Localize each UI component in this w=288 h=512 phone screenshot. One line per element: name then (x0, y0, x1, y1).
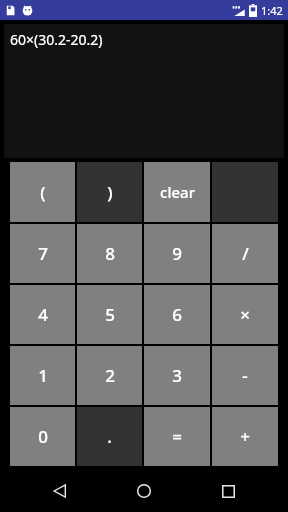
staticText: clear (160, 182, 195, 202)
button[interactable]: 5 (77, 285, 142, 344)
button[interactable]: 9 (144, 224, 210, 283)
staticText: - (242, 364, 248, 387)
staticText: ) (107, 181, 113, 204)
button[interactable]: 3 (144, 346, 210, 405)
button[interactable]: Back (36, 470, 84, 512)
button[interactable]: ) (77, 162, 142, 222)
button[interactable]: = (144, 407, 210, 466)
button[interactable]: Recent apps (204, 470, 252, 512)
button[interactable]: 0 (10, 407, 75, 466)
button[interactable]: 1 (10, 346, 75, 405)
button[interactable]: × (212, 285, 278, 344)
staticText: 1 (38, 364, 48, 387)
staticText: = (172, 425, 182, 448)
staticText: 8 (105, 242, 115, 265)
button[interactable]: 2 (77, 346, 142, 405)
staticText: 60×(30.2-20.2) (10, 30, 103, 49)
staticText: 9 (172, 242, 182, 265)
button[interactable]: 6 (144, 285, 210, 344)
button[interactable]: - (212, 346, 278, 405)
staticText: 7 (38, 242, 48, 265)
button[interactable]: 4 (10, 285, 75, 344)
staticText: 4 (38, 303, 48, 326)
button[interactable]: / (212, 224, 278, 283)
button[interactable]: ( (10, 162, 75, 222)
staticText: 6 (172, 303, 182, 326)
staticText: . (107, 425, 112, 448)
button[interactable]: clear (144, 162, 210, 222)
button[interactable]: 8 (77, 224, 142, 283)
staticText: ( (40, 181, 46, 204)
staticText: 2 (105, 364, 115, 387)
staticText: 3 (172, 364, 182, 387)
staticText: × (240, 303, 250, 326)
button[interactable]: + (212, 407, 278, 466)
staticText: + (240, 425, 250, 448)
button[interactable]: 7 (10, 224, 75, 283)
staticText: 5 (105, 303, 115, 326)
staticText: / (242, 242, 249, 265)
button[interactable]: . (77, 407, 142, 466)
staticText: 1:42 (261, 3, 283, 18)
staticText: 0 (38, 425, 48, 448)
button[interactable]: Home (120, 470, 168, 512)
